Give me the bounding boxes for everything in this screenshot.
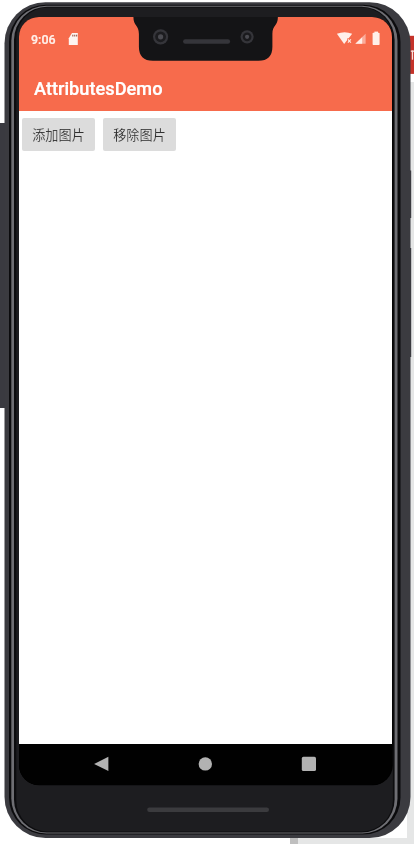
staticText: 移除图片	[113, 125, 166, 144]
staticText: AttributesDemo	[34, 78, 163, 99]
button[interactable]: 添加图片	[22, 118, 95, 151]
button[interactable]: Home	[189, 748, 221, 780]
button[interactable]: Recent apps	[293, 748, 325, 780]
staticText: 9:06	[31, 32, 56, 47]
button[interactable]: Back	[85, 748, 117, 780]
staticText: 添加图片	[32, 125, 85, 144]
button[interactable]: 移除图片	[103, 118, 176, 151]
